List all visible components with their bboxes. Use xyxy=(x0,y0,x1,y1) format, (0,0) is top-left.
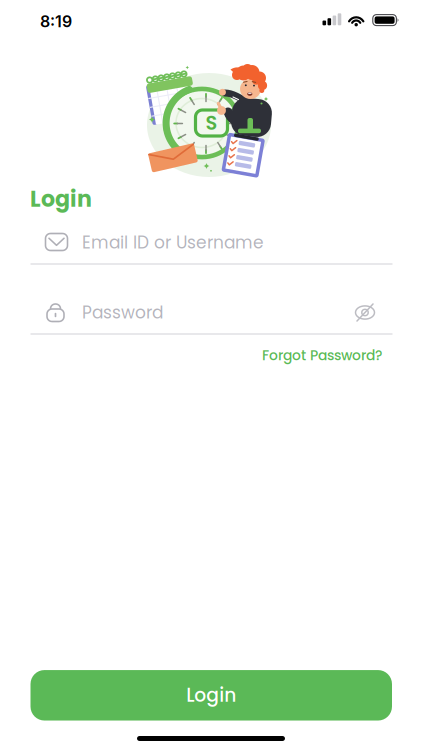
staticText: Password xyxy=(82,301,163,324)
button[interactable]: Email ID or Username xyxy=(82,222,422,262)
button[interactable]: Show password xyxy=(354,303,375,321)
button[interactable]: Password xyxy=(82,292,352,332)
staticText: Forgot Password? xyxy=(262,346,382,365)
staticText: S xyxy=(205,109,217,137)
button[interactable]: Forgot Password? xyxy=(30,346,382,365)
staticText: 8:19 xyxy=(40,12,72,31)
staticText: Email ID or Username xyxy=(82,231,264,254)
staticText: Login xyxy=(30,183,92,214)
staticText: Login xyxy=(186,682,236,708)
button[interactable]: Login xyxy=(30,670,392,720)
